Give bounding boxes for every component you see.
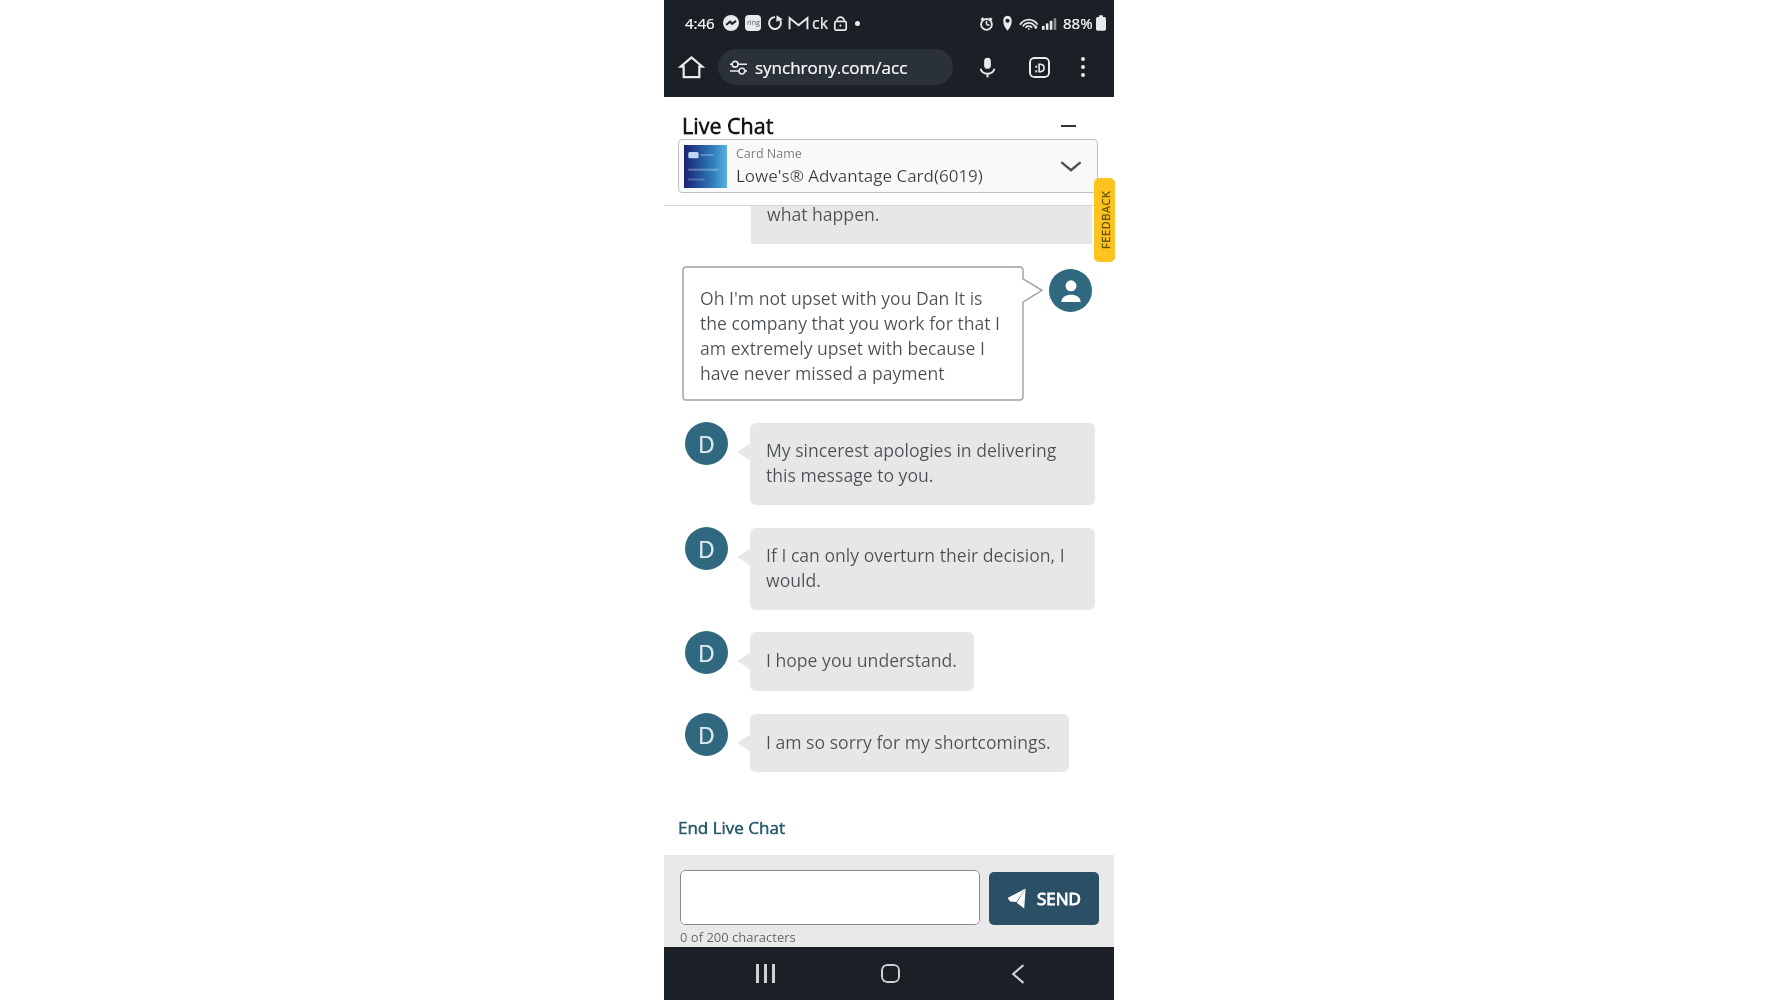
button[interactable]: Minimize chat	[1055, 113, 1081, 139]
button[interactable]: Home	[860, 947, 920, 1000]
staticText: 0 of 200 characters	[680, 928, 796, 946]
button[interactable]: Home	[675, 51, 707, 83]
button[interactable]: Select card	[678, 139, 1098, 193]
staticText: Oh I'm not upset with you Dan It is the …	[700, 286, 1008, 385]
staticText: what happen.	[767, 202, 880, 226]
staticText: FEEDBACK	[1098, 190, 1113, 249]
staticText: :D	[1035, 61, 1045, 75]
button[interactable]: SEND	[989, 872, 1099, 925]
button[interactable]: Tabs	[1023, 51, 1055, 83]
staticText: I am so sorry for my shortcomings.	[766, 730, 1059, 754]
button[interactable]: Back	[988, 947, 1048, 1000]
button[interactable]: End Live Chat	[675, 812, 788, 843]
staticText: Card Name	[736, 145, 802, 162]
staticText: Live Chat	[682, 111, 774, 140]
staticText: End Live Chat	[678, 816, 785, 839]
staticText: Lowe's® Advantage Card(6019)	[736, 164, 983, 187]
staticText: 4:46	[685, 13, 715, 33]
staticText: ck	[812, 12, 829, 34]
staticText: D	[698, 533, 715, 564]
staticText: If I can only overturn their decision, I…	[766, 543, 1066, 592]
staticText: My sincerest apologies in delivering thi…	[766, 438, 1062, 487]
button[interactable]: Type your message	[680, 870, 980, 925]
staticText: synchrony.com/acc	[755, 56, 908, 79]
staticText: I hope you understand.	[766, 648, 964, 672]
staticText: D	[698, 719, 715, 750]
button[interactable]: Voice search	[971, 51, 1003, 83]
staticText: ring	[747, 18, 760, 28]
staticText: SEND	[1037, 887, 1081, 910]
staticText: 88%	[1063, 13, 1093, 33]
staticText: D	[698, 637, 715, 668]
button[interactable]: Feedback	[1094, 178, 1115, 262]
button[interactable]: Address bar, synchrony.com/acc	[718, 49, 953, 85]
button[interactable]: Recents	[735, 947, 795, 1000]
staticText: D	[698, 428, 715, 459]
button[interactable]: More options	[1067, 51, 1099, 83]
